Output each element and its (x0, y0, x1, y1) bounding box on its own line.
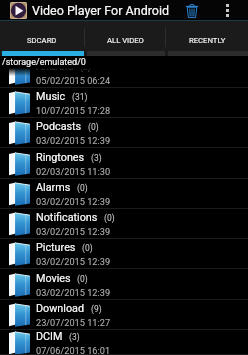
staticText: 10/07/2015 17:28 (36, 105, 111, 116)
button[interactable]: Movies (0, 269, 248, 300)
button[interactable]: ALL VIDEO (85, 21, 165, 56)
staticText: 07/06/2015 16:01 (36, 345, 111, 355)
button[interactable]: Android (0, 58, 248, 88)
button[interactable]: Music (0, 88, 248, 118)
button[interactable]: RECENTLY (166, 21, 248, 56)
staticText: (31) (72, 92, 88, 102)
staticText: (9) (91, 304, 102, 314)
staticText: Music (36, 90, 66, 103)
staticText: (3) (69, 332, 80, 342)
staticText: 03/02/2015 12:39 (36, 226, 111, 237)
staticText: (2) (80, 62, 91, 72)
staticText: Android (36, 60, 74, 73)
staticText: (0) (104, 213, 115, 223)
staticText: 23/07/2015 11:27 (36, 317, 111, 328)
staticText: Download (36, 302, 85, 315)
button[interactable]: Notifications (0, 209, 248, 239)
staticText: Pictures (36, 241, 76, 254)
staticText: Alarms (36, 181, 71, 194)
staticText: 03/02/2015 12:39 (36, 287, 111, 298)
staticText: (0) (88, 122, 99, 132)
button[interactable]: Pictures (0, 239, 248, 269)
staticText: ALL VIDEO (107, 36, 144, 45)
staticText: (0) (77, 274, 88, 284)
button[interactable]: Ringtones (0, 148, 248, 179)
staticText: (0) (77, 183, 88, 193)
button[interactable]: Podcasts (0, 118, 248, 148)
staticText: /storage/emulated/0 (2, 57, 86, 68)
staticText: Notifications (36, 211, 98, 224)
staticText: 03/02/2015 12:39 (36, 196, 111, 207)
button[interactable]: DCIM (0, 330, 248, 355)
staticText: 03/02/2015 12:39 (36, 256, 111, 267)
button[interactable]: Delete (176, 0, 207, 21)
staticText: (3) (91, 153, 102, 163)
staticText: Movies (36, 272, 71, 285)
button[interactable]: Download (0, 300, 248, 330)
button[interactable]: SDCARD (0, 21, 84, 56)
staticText: RECENTLY (189, 36, 226, 45)
staticText: (0) (82, 243, 93, 253)
staticText: DCIM (36, 330, 63, 343)
staticText: Video Player For Android (32, 3, 176, 18)
staticText: 02/03/2015 11:30 (36, 166, 111, 177)
staticText: 05/02/2015 06:24 (36, 75, 111, 86)
button[interactable]: More options (207, 0, 248, 21)
staticText: 03/02/2015 12:39 (36, 135, 111, 146)
staticText: Podcasts (36, 120, 82, 133)
staticText: SDCARD (27, 36, 57, 45)
button[interactable]: Alarms (0, 179, 248, 209)
staticText: Ringtones (36, 151, 85, 164)
